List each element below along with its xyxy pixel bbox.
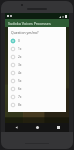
staticText: 3x	[18, 63, 22, 67]
button[interactable]: 3x	[11, 61, 63, 69]
button[interactable]: 4x	[11, 69, 63, 77]
button[interactable]: 0	[11, 37, 63, 45]
button[interactable]: 8x	[11, 101, 63, 109]
staticText: 2x	[18, 55, 22, 59]
button[interactable]: 5x	[11, 77, 63, 85]
staticText: 5x	[18, 79, 22, 83]
button[interactable]: 6x	[11, 85, 63, 93]
staticText: Question yes/no?	[11, 30, 39, 35]
staticText: Sudoku Voices Processes	[8, 21, 51, 26]
staticText: 4x	[18, 71, 22, 75]
button[interactable]: 7x	[11, 93, 63, 101]
button[interactable]: Back	[5, 123, 27, 132]
button[interactable]: Recents	[48, 123, 69, 132]
button[interactable]: Home	[27, 123, 48, 132]
button[interactable]: 1x	[11, 45, 63, 53]
staticText: 6x	[18, 87, 22, 91]
button[interactable]: 2x	[11, 53, 63, 61]
button[interactable]: Sudoku Voices Processes	[5, 19, 69, 27]
staticText: 8x	[18, 103, 22, 107]
staticText: 1x	[18, 47, 22, 51]
staticText: 7x	[18, 95, 22, 99]
staticText: 0	[18, 39, 20, 43]
